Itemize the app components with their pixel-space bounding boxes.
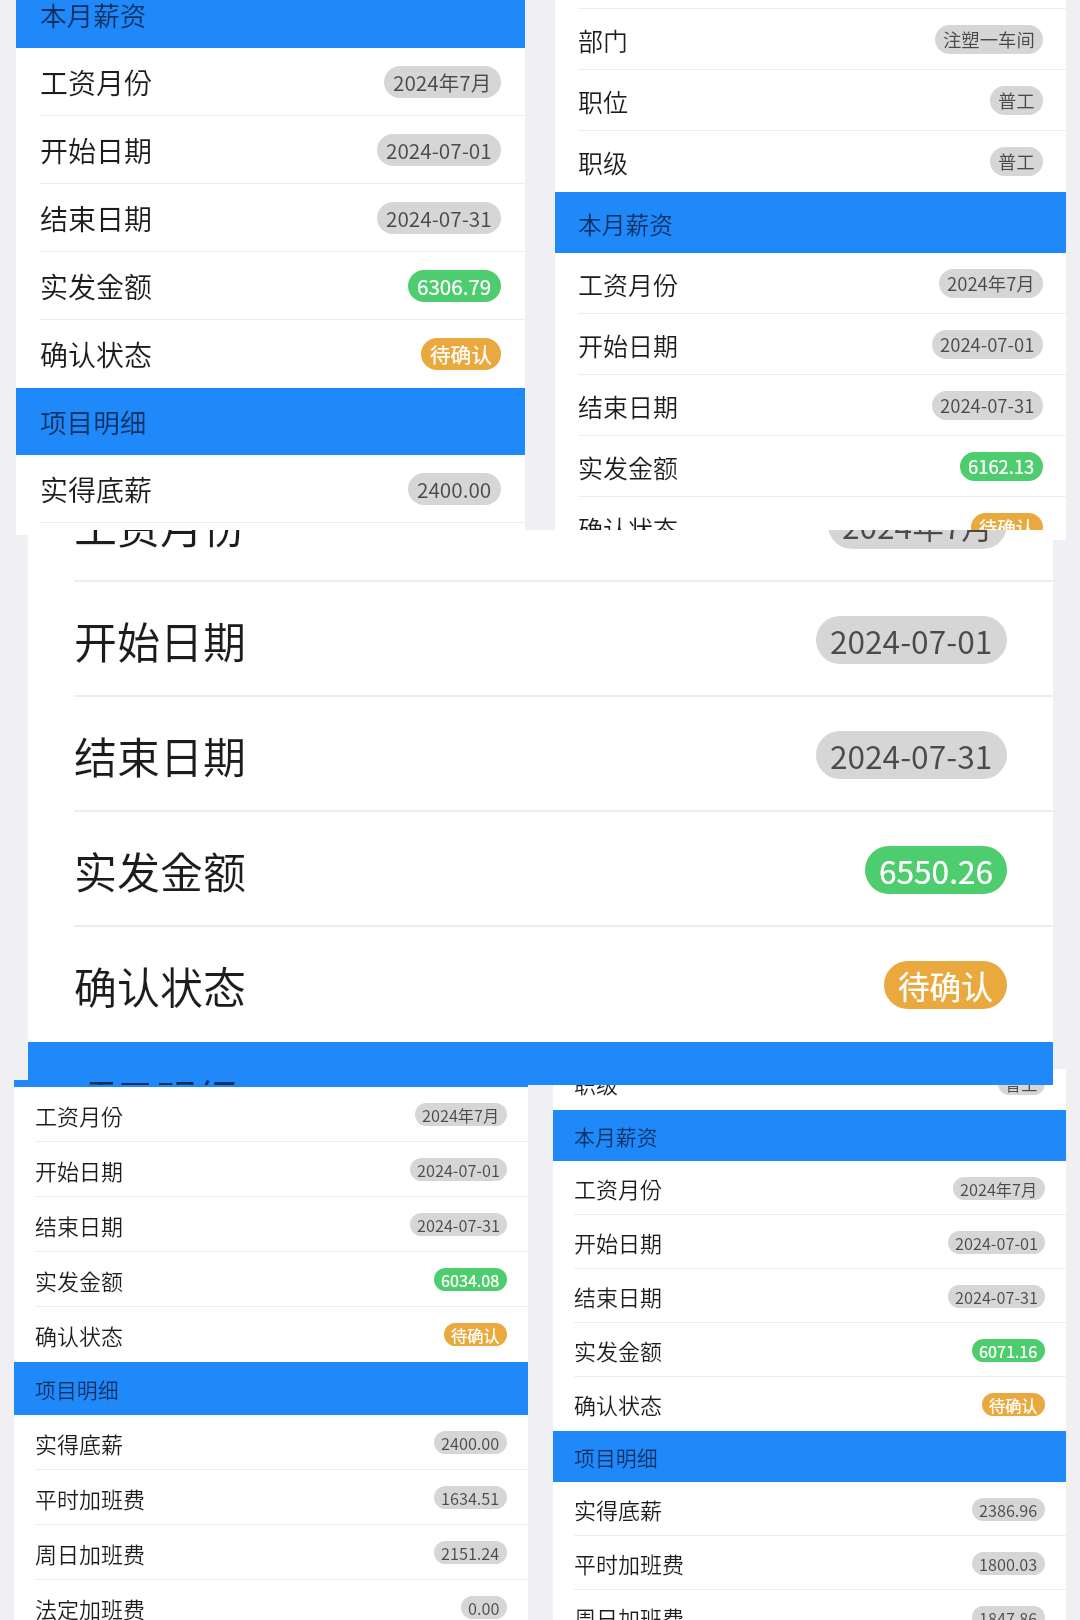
button[interactable]: 工资月份	[14, 1087, 528, 1142]
button[interactable]: 确认状态	[553, 1377, 1066, 1431]
button[interactable]: 结束日期	[14, 1197, 528, 1252]
staticText: 项目明细	[35, 1374, 119, 1404]
button[interactable]: 工资月份	[16, 48, 525, 116]
button[interactable]: 项目明细	[16, 388, 525, 455]
button[interactable]: 工资月份	[553, 1161, 1066, 1215]
staticText: 实发金额	[574, 1334, 663, 1366]
staticText: 2024-07-31	[830, 732, 993, 778]
button[interactable]: 结束日期	[553, 1269, 1066, 1323]
staticText: 开始日期	[40, 130, 153, 171]
staticText: 结束日期	[574, 1280, 663, 1312]
button[interactable]: 职位	[555, 70, 1066, 131]
staticText: 待确认	[979, 514, 1035, 540]
other: 工资条截图 4	[553, 1069, 1066, 1620]
staticText: 职级	[574, 1069, 619, 1099]
other: 工资条截图 放大	[28, 530, 1053, 1085]
staticText: 实得底薪	[574, 1493, 663, 1525]
button[interactable]: 工资月份	[28, 530, 1053, 582]
button[interactable]: 工资月份	[555, 253, 1066, 314]
staticText: 实发金额	[74, 839, 246, 901]
staticText: 工资月份	[574, 1172, 663, 1204]
button[interactable]: 项目明细	[28, 1042, 1053, 1085]
staticText: 项目明细	[574, 1442, 658, 1472]
button[interactable]: 实发金额	[28, 812, 1053, 927]
button[interactable]: 工号	[555, 0, 1066, 9]
button[interactable]: 周日加班费	[553, 1590, 1066, 1620]
button[interactable]: 本月薪资	[555, 192, 1066, 253]
button[interactable]: 结束日期	[28, 697, 1053, 812]
staticText: 周日加班费	[35, 1537, 146, 1569]
staticText: 2024-07-01	[417, 1158, 500, 1181]
staticText: 法定加班费	[35, 1592, 146, 1620]
staticText: 工资月份	[74, 530, 246, 556]
button[interactable]: 部门	[555, 9, 1066, 70]
button[interactable]: 开始日期	[28, 582, 1053, 697]
staticText: 2024-07-31	[955, 1285, 1038, 1308]
staticText: 工资月份	[35, 1099, 124, 1131]
staticText: 2024年7月	[842, 530, 993, 548]
button[interactable]: 实发金额	[16, 252, 525, 320]
staticText: 实发金额	[35, 1264, 124, 1296]
button[interactable]: 开始日期	[16, 116, 525, 184]
staticText: 开始日期	[35, 1154, 124, 1186]
button[interactable]: 实发金额	[555, 436, 1066, 497]
button[interactable]: 本月薪资	[553, 1110, 1066, 1161]
staticText: 项目明细	[74, 1068, 238, 1085]
staticText: 确认状态	[40, 334, 153, 375]
staticText: 2024年7月	[422, 1103, 500, 1126]
button[interactable]: 项目明细	[14, 1362, 528, 1415]
button[interactable]: 实得底薪	[14, 1415, 528, 1470]
staticText: 开始日期	[74, 609, 246, 671]
staticText: 工资月份	[40, 62, 153, 103]
staticText: 6034.08	[441, 1268, 500, 1291]
button[interactable]: 平时加班费	[16, 523, 525, 535]
button[interactable]: 实得底薪	[16, 455, 525, 523]
button[interactable]: 职级	[553, 1069, 1066, 1110]
button[interactable]: 确认状态	[14, 1307, 528, 1362]
staticText: 确认状态	[35, 1319, 124, 1351]
button[interactable]: 结束日期	[555, 375, 1066, 436]
staticText: 2400.00	[417, 474, 492, 504]
staticText: 2024-07-31	[940, 392, 1035, 419]
staticText: 普工	[998, 148, 1035, 175]
button[interactable]: 实发金额	[553, 1323, 1066, 1377]
staticText: 周日加班费	[574, 1601, 685, 1620]
staticText: 2024-07-31	[386, 203, 492, 233]
button[interactable]: 开始日期	[555, 314, 1066, 375]
button[interactable]: 确认状态	[16, 320, 525, 388]
staticText: 2024年7月	[960, 1177, 1038, 1200]
button[interactable]: 项目明细	[553, 1431, 1066, 1482]
staticText: 确认状态	[574, 1388, 663, 1420]
staticText: 2024-07-01	[830, 617, 993, 663]
staticText: 确认状态	[578, 510, 679, 540]
staticText: 结束日期	[35, 1209, 124, 1241]
button[interactable]: 本月薪资	[16, 0, 525, 48]
staticText: 6071.16	[979, 1339, 1038, 1362]
staticText: 1847.86	[979, 1606, 1038, 1620]
button[interactable]: 平时加班费	[553, 1536, 1066, 1590]
staticText: 工资月份	[578, 266, 679, 302]
staticText: 2151.24	[441, 1541, 500, 1564]
staticText: 本月薪资	[40, 0, 147, 34]
staticText: 本月薪资	[578, 206, 674, 240]
button[interactable]: 周日加班费	[14, 1525, 528, 1580]
staticText: 普工	[1005, 1072, 1038, 1095]
staticText: 待确认	[898, 962, 993, 1008]
button[interactable]: 结束日期	[16, 184, 525, 252]
staticText: 实得底薪	[35, 1427, 124, 1459]
button[interactable]: 确认状态	[555, 497, 1066, 540]
button[interactable]: 法定加班费	[14, 1580, 528, 1620]
button[interactable]: 确认状态	[28, 927, 1053, 1042]
staticText: 部门	[578, 22, 629, 58]
staticText: 职级	[578, 144, 629, 180]
button[interactable]: 职级	[555, 131, 1066, 192]
button[interactable]: 开始日期	[553, 1215, 1066, 1269]
button[interactable]: 实发金额	[14, 1252, 528, 1307]
button[interactable]: 平时加班费	[14, 1470, 528, 1525]
staticText: 开始日期	[578, 327, 679, 363]
button[interactable]: 开始日期	[14, 1142, 528, 1197]
button[interactable]: 实得底薪	[553, 1482, 1066, 1536]
staticText: 2386.96	[979, 1498, 1038, 1521]
staticText: 本月薪资	[574, 1121, 658, 1151]
button[interactable]: 本月薪资	[14, 1080, 528, 1087]
